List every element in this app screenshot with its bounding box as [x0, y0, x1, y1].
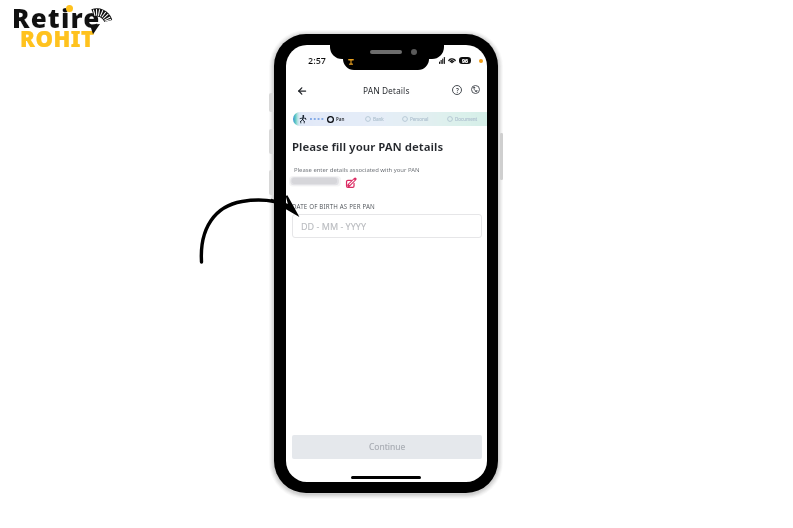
- staticText: 2:57: [308, 54, 326, 66]
- staticText: Please fill your PAN details: [292, 139, 444, 155]
- staticText: PAN Details: [363, 85, 410, 96]
- staticText: Pan: [336, 116, 345, 122]
- staticText: ?: [456, 86, 459, 94]
- staticText: ROHIT: [20, 23, 95, 53]
- button[interactable]: Call support: [471, 85, 480, 94]
- button[interactable]: Personal: [402, 112, 429, 126]
- button[interactable]: Bank: [365, 112, 384, 126]
- staticText: Document: [455, 116, 478, 122]
- button[interactable]: Help: [452, 85, 462, 95]
- staticText: Bank: [373, 116, 384, 122]
- button[interactable]: Continue: [292, 435, 482, 459]
- staticText: DD - MM - YYYY: [301, 220, 366, 232]
- staticText: Retire: [12, 0, 101, 35]
- button[interactable]: DD - MM - YYYY: [292, 214, 482, 238]
- button[interactable]: Pan: [327, 112, 345, 126]
- button[interactable]: Back: [294, 84, 310, 97]
- button[interactable]: Edit PAN: [345, 177, 356, 188]
- staticText: Personal: [410, 116, 429, 122]
- staticText: 96: [462, 57, 468, 64]
- staticText: Continue: [369, 441, 406, 453]
- button[interactable]: Document: [447, 112, 478, 126]
- staticText: Please enter details associated with you…: [294, 166, 420, 174]
- staticText: DATE OF BIRTH AS PER PAN: [292, 202, 375, 210]
